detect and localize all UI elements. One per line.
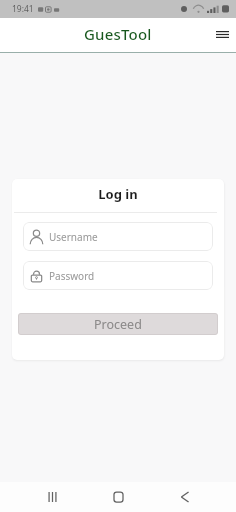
button[interactable]: Password [23,261,213,290]
button[interactable]: Recent apps [33,482,71,512]
button[interactable]: Username [23,222,213,251]
button[interactable]: Menu [210,22,234,46]
button[interactable]: Proceed [18,313,218,335]
staticText: Username [49,230,98,244]
staticText: GuesTool [84,24,152,44]
button[interactable]: Back [165,482,203,512]
staticText: Password [49,269,95,283]
button[interactable]: Home [99,482,137,512]
staticText: Proceed [94,316,142,333]
staticText: 19:41 [12,3,34,15]
staticText: Log in [12,185,224,203]
